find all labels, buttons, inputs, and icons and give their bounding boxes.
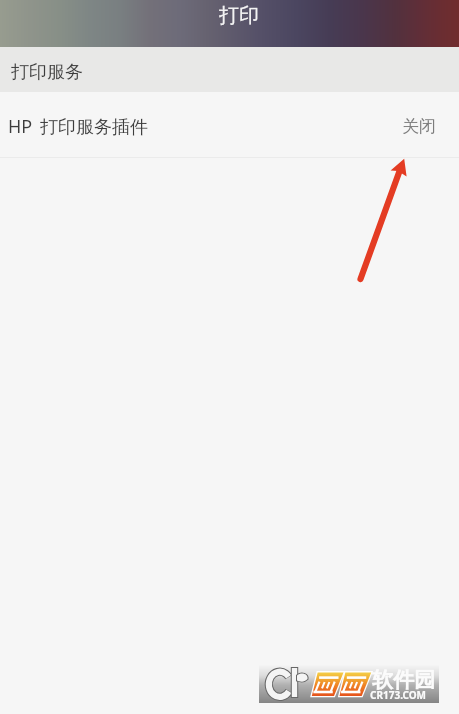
button[interactable]: Back [0,0,47,47]
staticText: HP 打印服务插件 [8,114,148,139]
staticText: CR173.COM [370,688,427,702]
button[interactable]: HP 打印服务插件 [0,92,459,157]
staticText: 软件园 [372,667,435,693]
staticText: 打印 [219,3,259,28]
staticText: 打印服务 [11,61,83,84]
staticText: 关闭 [402,116,436,137]
